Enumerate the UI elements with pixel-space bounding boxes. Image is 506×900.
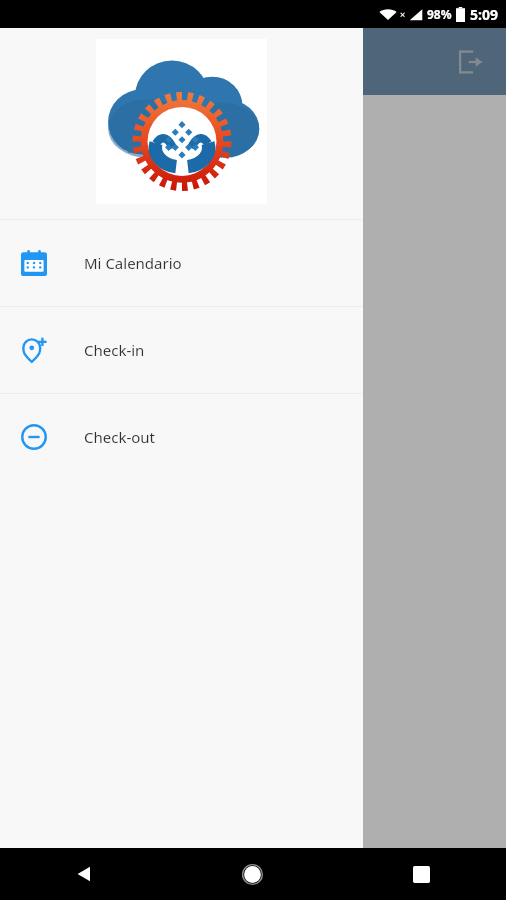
button[interactable]: Mi Calendario <box>0 220 363 306</box>
staticText: Check-in <box>84 340 145 360</box>
staticText: Check-out <box>84 427 156 447</box>
staticText: × <box>400 8 406 20</box>
button[interactable]: Cerrar sesión <box>450 42 490 82</box>
staticText: 5:09 <box>470 5 498 24</box>
staticText: 98% <box>427 6 452 22</box>
button[interactable]: Recent apps <box>337 848 506 900</box>
staticText: Mi Calendario <box>84 253 182 273</box>
button[interactable]: Check-out <box>0 394 363 480</box>
button[interactable]: Check-in <box>0 307 363 393</box>
button[interactable]: Back <box>0 848 168 900</box>
button[interactable]: Home <box>168 848 337 900</box>
